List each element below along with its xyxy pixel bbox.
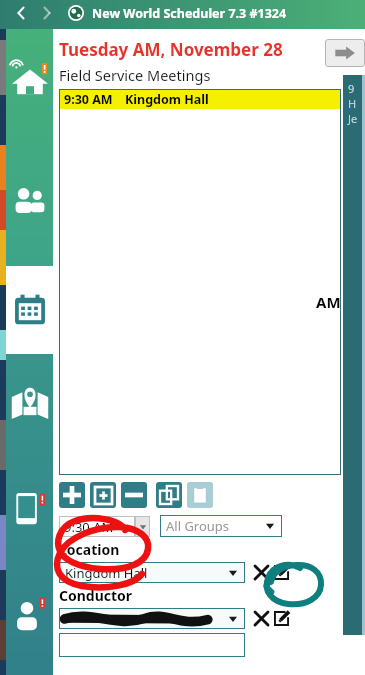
button[interactable]: Devices [8,487,52,531]
button[interactable]: Edit location [271,561,293,583]
button[interactable]: Edit conductor [271,607,293,629]
button[interactable]: 9:30 AM [59,89,341,109]
button[interactable]: Back [8,0,34,26]
button[interactable]: All Groups [160,515,282,537]
staticText: H [348,96,357,111]
button[interactable] [59,608,245,629]
button[interactable]: Remove [121,482,147,508]
staticText: All Groups [166,517,230,535]
button[interactable]: Forward [34,0,60,26]
button[interactable]: Clear location [251,562,271,582]
button[interactable]: Home [8,57,52,101]
staticText: Je [348,111,358,126]
button[interactable]: Publishers [8,179,52,223]
button[interactable]: Add boxed [90,482,116,508]
button[interactable]: Clear conductor [251,608,271,628]
button[interactable]: Copy [156,482,182,508]
button[interactable]: Paste [187,482,213,508]
button[interactable] [59,633,245,657]
button[interactable]: Add [59,482,85,508]
button[interactable]: 9:30 AM [59,516,135,537]
staticText: AM [316,292,341,312]
button[interactable]: Kingdom Hall [59,562,245,583]
button[interactable]: Time picker [135,516,150,537]
staticText: Kingdom Hall [65,564,148,582]
staticText: 9:30 AM [64,518,114,536]
button[interactable]: Schedules [6,266,53,354]
staticText: Kingdom Hall [125,91,209,108]
staticText: Conductor [59,586,133,605]
button[interactable]: Territories [8,381,52,425]
staticText: Tuesday AM, November 28 [59,38,283,61]
staticText: 9:30 AM [64,91,113,108]
staticText: Field Service Meetings [59,65,211,85]
button[interactable]: Account [8,593,52,637]
staticText: New World Scheduler 7.3 #1324 [92,5,287,22]
staticText: 9 [348,81,355,96]
staticText: Location [59,540,120,559]
button[interactable]: Next day [325,39,365,67]
